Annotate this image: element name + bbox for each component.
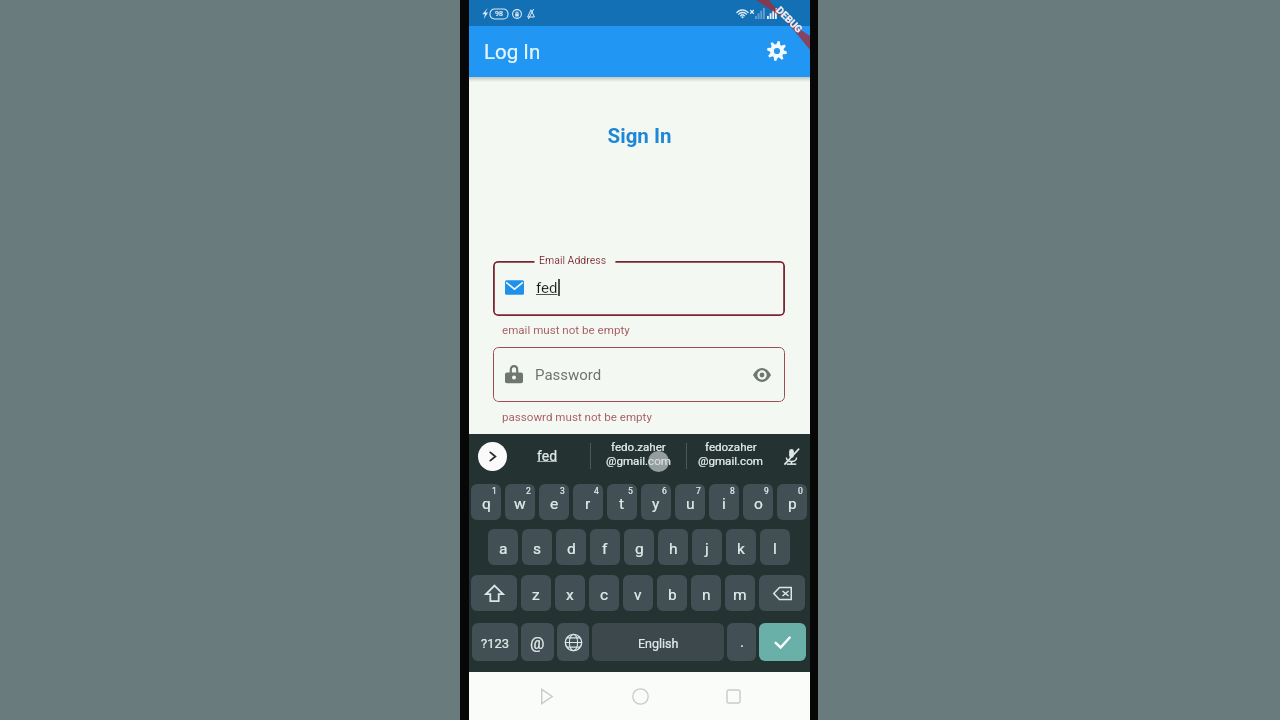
- button[interactable]: Recents: [716, 679, 750, 713]
- button[interactable]: h: [658, 529, 688, 565]
- button[interactable]: j: [692, 529, 722, 565]
- staticText: English: [638, 636, 679, 651]
- staticText: l: [773, 540, 777, 558]
- staticText: o: [754, 495, 763, 513]
- button[interactable]: w: [505, 484, 535, 520]
- staticText: e: [550, 495, 559, 513]
- button[interactable]: Back: [529, 679, 563, 713]
- button[interactable]: Password: [493, 347, 785, 402]
- staticText: 7: [696, 486, 701, 496]
- staticText: n: [702, 586, 711, 604]
- staticText: Sign In: [469, 124, 810, 148]
- button[interactable]: n: [691, 575, 721, 611]
- staticText: m: [733, 586, 747, 604]
- button[interactable]: Voice input: [778, 443, 804, 469]
- staticText: z: [532, 586, 540, 604]
- staticText: 5: [628, 486, 633, 496]
- button[interactable]: English: [592, 623, 724, 661]
- staticText: 98: [495, 10, 503, 18]
- button[interactable]: c: [589, 575, 619, 611]
- staticText: x: [566, 586, 574, 604]
- staticText: 2: [526, 486, 531, 496]
- button[interactable]: f: [590, 529, 620, 565]
- button[interactable]: z: [521, 575, 551, 611]
- staticText: @: [530, 634, 545, 653]
- button[interactable]: r: [573, 484, 603, 520]
- button[interactable]: i: [709, 484, 739, 520]
- button[interactable]: ?123: [472, 623, 518, 661]
- staticText: fed: [537, 448, 558, 464]
- staticText: r: [585, 495, 591, 513]
- staticText: email must not be empty: [502, 323, 630, 337]
- staticText: y: [652, 495, 660, 513]
- button[interactable]: fed: [493, 261, 785, 316]
- button[interactable]: Backspace: [759, 575, 805, 611]
- staticText: DEBUG: [773, 4, 804, 35]
- button[interactable]: p: [777, 484, 807, 520]
- staticText: s: [533, 540, 541, 558]
- staticText: w: [514, 495, 526, 513]
- staticText: 6: [662, 486, 667, 496]
- staticText: @gmail.com: [606, 454, 671, 468]
- staticText: g: [635, 540, 644, 558]
- button[interactable]: a: [488, 529, 518, 565]
- staticText: fed: [536, 279, 558, 297]
- button[interactable]: k: [726, 529, 756, 565]
- button[interactable]: y: [641, 484, 671, 520]
- staticText: t: [619, 495, 625, 513]
- button[interactable]: m: [725, 575, 755, 611]
- button[interactable]: d: [556, 529, 586, 565]
- button[interactable]: Home: [623, 679, 657, 713]
- button[interactable]: Shift: [471, 575, 517, 611]
- staticText: c: [600, 586, 609, 604]
- staticText: d: [567, 540, 576, 558]
- staticText: h: [669, 540, 678, 558]
- button[interactable]: Show password: [749, 362, 775, 388]
- button[interactable]: t: [607, 484, 637, 520]
- button[interactable]: Done: [759, 623, 806, 661]
- staticText: b: [668, 586, 677, 604]
- button[interactable]: Change language: [557, 623, 589, 661]
- staticText: k: [737, 540, 745, 558]
- staticText: fedo.zaher: [611, 440, 666, 454]
- staticText: Password: [535, 366, 602, 384]
- button[interactable]: fedozaher: [684, 434, 776, 478]
- button[interactable]: Settings: [760, 34, 794, 68]
- button[interactable]: fed: [512, 434, 582, 478]
- staticText: j: [705, 540, 709, 558]
- button[interactable]: .: [727, 623, 756, 661]
- button[interactable]: e: [539, 484, 569, 520]
- staticText: 1: [492, 486, 497, 496]
- button[interactable]: x: [555, 575, 585, 611]
- button[interactable]: More suggestions: [478, 442, 507, 471]
- staticText: q: [482, 495, 491, 513]
- staticText: .: [740, 633, 744, 651]
- button[interactable]: b: [657, 575, 687, 611]
- button[interactable]: l: [760, 529, 790, 565]
- staticText: Email Address: [539, 254, 607, 266]
- staticText: Log In: [484, 40, 541, 64]
- staticText: p: [788, 495, 797, 513]
- staticText: a: [499, 540, 508, 558]
- staticText: @gmail.com: [698, 454, 763, 468]
- staticText: u: [686, 495, 695, 513]
- button[interactable]: g: [624, 529, 654, 565]
- button[interactable]: u: [675, 484, 705, 520]
- staticText: v: [634, 586, 642, 604]
- staticText: i: [722, 495, 726, 513]
- button[interactable]: s: [522, 529, 552, 565]
- staticText: f: [602, 540, 608, 558]
- staticText: ?123: [481, 636, 510, 651]
- button[interactable]: v: [623, 575, 653, 611]
- button[interactable]: q: [471, 484, 501, 520]
- staticText: passowrd must not be empty: [502, 410, 652, 424]
- button[interactable]: fedo.zaher: [592, 434, 684, 478]
- staticText: 9: [764, 486, 769, 496]
- staticText: 0: [798, 486, 803, 496]
- button[interactable]: o: [743, 484, 773, 520]
- staticText: fedozaher: [705, 440, 757, 454]
- staticText: 4: [594, 486, 599, 496]
- button[interactable]: @: [521, 623, 554, 661]
- staticText: 3: [560, 486, 565, 496]
- staticText: 8: [730, 486, 735, 496]
